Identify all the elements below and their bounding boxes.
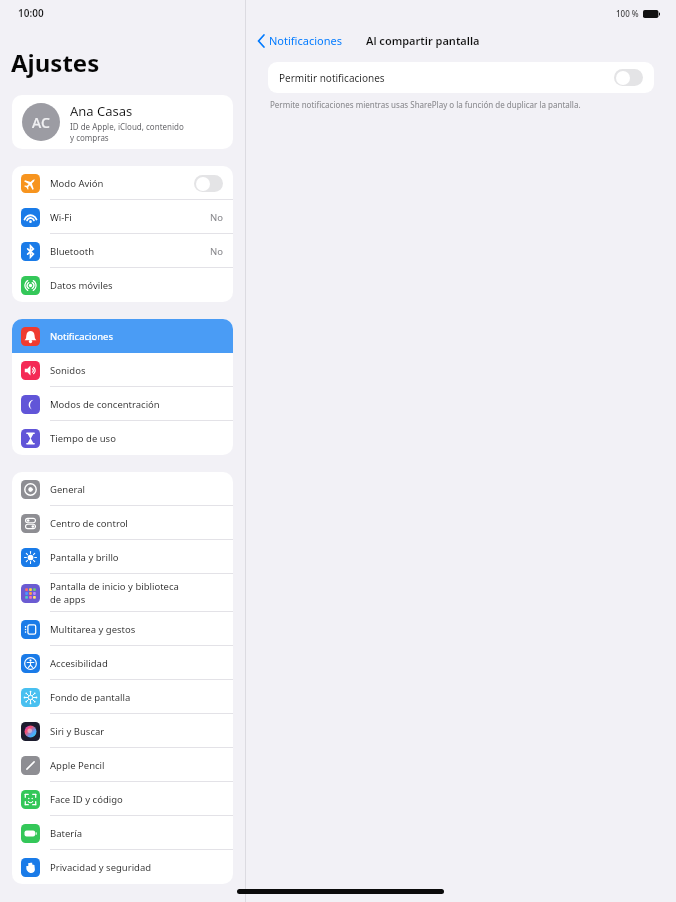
button[interactable]: Face ID y código: [12, 782, 233, 816]
staticText: No: [210, 245, 223, 258]
staticText: Fondo de pantalla: [50, 691, 131, 704]
button[interactable]: Tiempo de uso: [12, 421, 233, 455]
button[interactable]: AC: [12, 95, 233, 149]
staticText: 100 %: [616, 8, 639, 19]
staticText: Centro de control: [50, 517, 128, 530]
staticText: General: [50, 483, 86, 496]
staticText: ID de Apple, iCloud, contenido: [70, 121, 184, 132]
button[interactable]: Accesibilidad: [12, 646, 233, 680]
staticText: Ajustes: [11, 46, 100, 79]
staticText: Notificaciones: [50, 330, 113, 343]
staticText: Pantalla y brillo: [50, 551, 119, 564]
button[interactable]: Modos de concentración: [12, 387, 233, 421]
staticText: Pantalla de inicio y biblioteca: [50, 580, 179, 593]
staticText: Permitir notificaciones: [279, 71, 385, 85]
button[interactable]: Apple Pencil: [12, 748, 233, 782]
button[interactable]: Notificaciones: [254, 30, 346, 51]
button[interactable]: Fondo de pantalla: [12, 680, 233, 714]
button[interactable]: Notificaciones: [12, 319, 233, 353]
staticText: Wi-Fi: [50, 211, 72, 224]
button[interactable]: Multitarea y gestos: [12, 612, 233, 646]
button[interactable]: Privacidad y seguridad: [12, 850, 233, 884]
staticText: Accesibilidad: [50, 657, 108, 670]
button[interactable]: Bluetooth: [12, 234, 233, 268]
staticText: Sonidos: [50, 364, 86, 377]
button[interactable]: Modo Avión: [12, 166, 233, 200]
button[interactable]: Siri y Buscar: [12, 714, 233, 748]
button[interactable]: General: [12, 472, 233, 506]
staticText: de apps: [50, 593, 86, 606]
button[interactable]: Permitir notificaciones: [268, 62, 654, 93]
staticText: Notificaciones: [269, 33, 342, 48]
button[interactable]: Centro de control: [12, 506, 233, 540]
staticText: Modo Avión: [50, 177, 104, 190]
staticText: Datos móviles: [50, 279, 113, 292]
staticText: Privacidad y seguridad: [50, 861, 152, 874]
staticText: Ana Casas: [70, 102, 133, 120]
staticText: Face ID y código: [50, 793, 123, 806]
staticText: Batería: [50, 827, 82, 840]
staticText: Tiempo de uso: [50, 432, 116, 445]
staticText: y compras: [70, 132, 109, 143]
staticText: Modos de concentración: [50, 398, 160, 411]
staticText: Multitarea y gestos: [50, 623, 136, 636]
staticText: Apple Pencil: [50, 759, 105, 772]
staticText: Permite notificaciones mientras usas Sha…: [270, 99, 581, 110]
button[interactable]: Pantalla de inicio y biblioteca: [12, 574, 233, 612]
button[interactable]: Datos móviles: [12, 268, 233, 302]
staticText: Siri y Buscar: [50, 725, 105, 738]
staticText: Bluetooth: [50, 245, 95, 258]
button[interactable]: Pantalla y brillo: [12, 540, 233, 574]
button[interactable]: Batería: [12, 816, 233, 850]
button[interactable]: Sonidos: [12, 353, 233, 387]
button[interactable]: Permitir notificaciones desactivado: [614, 69, 643, 86]
staticText: Al compartir pantalla: [366, 33, 480, 48]
button[interactable]: Modo Avión desactivado: [194, 175, 223, 192]
staticText: No: [210, 211, 223, 224]
button[interactable]: Wi-Fi: [12, 200, 233, 234]
staticText: AC: [32, 113, 50, 132]
staticText: 10:00: [18, 6, 44, 20]
